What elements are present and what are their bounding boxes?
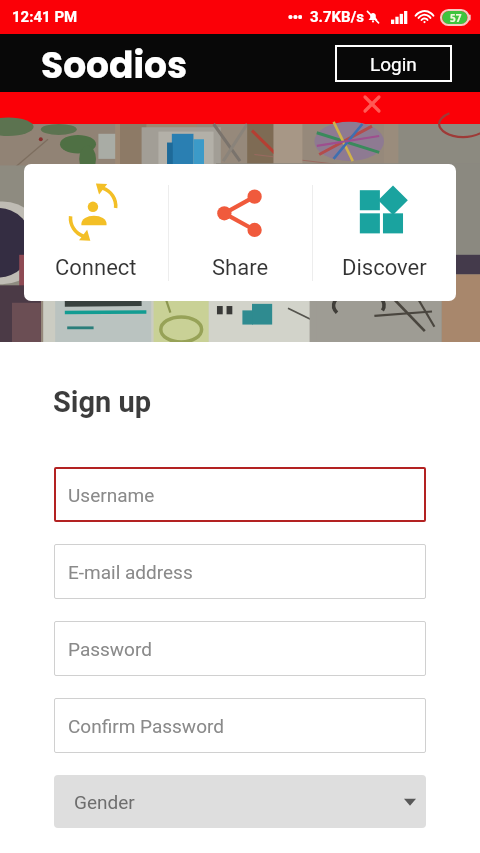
staticText: Login <box>370 53 417 75</box>
button[interactable]: Close <box>357 89 387 119</box>
button[interactable]: Password <box>54 621 426 676</box>
staticText: Sign up <box>53 385 152 419</box>
staticText: Username <box>68 484 155 506</box>
button[interactable]: Login <box>335 45 452 82</box>
staticText: Discover <box>342 255 427 281</box>
button[interactable]: Share <box>169 164 312 301</box>
staticText: E-mail address <box>68 561 193 583</box>
staticText: Password <box>68 638 152 660</box>
button[interactable]: Discover <box>313 164 456 301</box>
staticText: Connect <box>55 255 137 281</box>
staticText: 57 <box>450 11 462 25</box>
staticText: 3.7KB/s <box>310 8 365 26</box>
button[interactable]: Username <box>54 467 426 522</box>
staticText: Share <box>212 255 269 281</box>
button[interactable]: Gender <box>54 775 426 828</box>
staticText: ••• <box>288 8 303 26</box>
staticText: 12:41 PM <box>12 8 78 26</box>
button[interactable]: Confirm Password <box>54 698 426 753</box>
button[interactable]: E-mail address <box>54 544 426 599</box>
button[interactable]: Connect <box>24 164 168 301</box>
staticText: Soodios <box>41 40 188 90</box>
staticText: Gender <box>74 791 135 813</box>
staticText: Confirm Password <box>68 715 224 737</box>
